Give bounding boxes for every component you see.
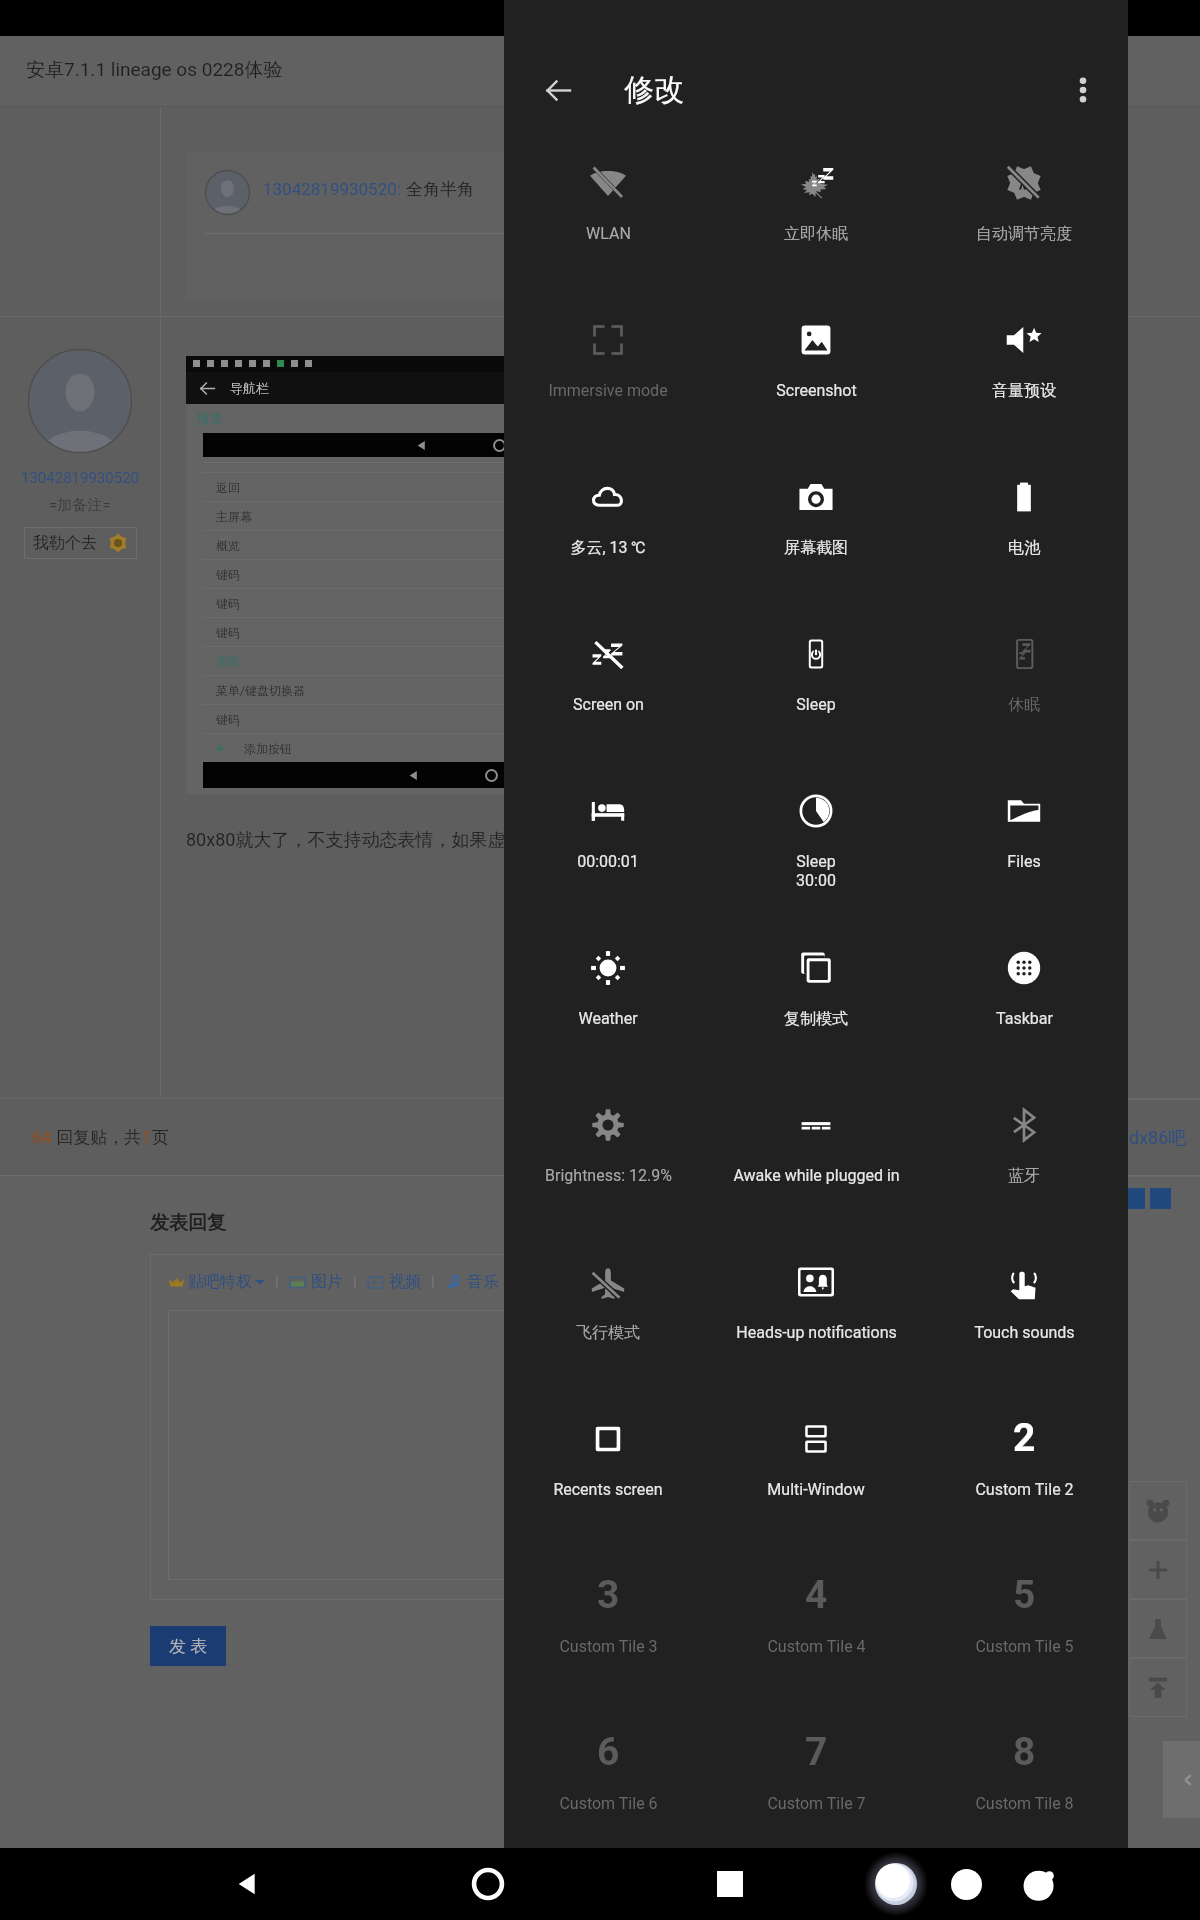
button[interactable]: Recents screen (504, 1421, 712, 1541)
staticText: Awake while plugged in (733, 1166, 900, 1185)
button[interactable]: 飞行模式 (504, 1264, 712, 1384)
staticText: Custom Tile 7 (767, 1794, 866, 1813)
staticText: 13042819930520: (263, 179, 406, 199)
staticText: 7 (805, 1729, 828, 1775)
staticText: 8 (1013, 1729, 1036, 1775)
staticText: 安卓7.1.1 lineage os 0228体验 (26, 58, 283, 82)
staticText: 键码 (216, 596, 240, 611)
button[interactable]: 7 (712, 1735, 920, 1855)
button[interactable]: Files (920, 793, 1128, 913)
staticText: 复制模式 (784, 1009, 848, 1029)
staticText: 添加按钮 (244, 741, 292, 756)
button[interactable]: Custom key 2 (930, 1848, 1002, 1920)
staticText: 80x80就大了，不支持动态表情，如果虚拟 (186, 829, 524, 852)
button[interactable]: Recents (694, 1848, 766, 1920)
staticText: Custom Tile 6 (559, 1794, 658, 1813)
button[interactable]: Taskbar (920, 950, 1128, 1070)
button[interactable]: Back (530, 62, 586, 118)
button[interactable]: WLAN (504, 165, 712, 285)
button[interactable]: 4 (712, 1578, 920, 1698)
staticText: 图片 (311, 1272, 343, 1292)
button[interactable]: Sleep (712, 793, 920, 913)
staticText: 我勒个去 (33, 533, 97, 553)
staticText: + (215, 738, 225, 758)
staticText: 概览 (216, 538, 240, 553)
button[interactable]: 00:00:01 (504, 793, 712, 913)
button[interactable]: Screen on (504, 636, 712, 756)
staticText: Brightness: 12.9% (545, 1166, 672, 1185)
staticText: 电池 (1008, 538, 1040, 558)
staticText: Files (1007, 852, 1041, 871)
staticText: Screen on (573, 695, 644, 714)
staticText: 菜单/键盘切换器 (216, 683, 305, 698)
staticText: Immersive mode (548, 381, 668, 400)
button[interactable]: Back (211, 1848, 283, 1920)
button[interactable]: 休眠 (920, 636, 1128, 756)
staticText: 修改 (624, 71, 684, 109)
button[interactable]: Touch sounds (920, 1264, 1128, 1384)
button[interactable]: Custom key 1 (860, 1848, 932, 1920)
staticText: 全角半角 (406, 179, 474, 200)
staticText: 休眠 (1008, 695, 1040, 715)
staticText: Heads-up notifications (736, 1323, 897, 1342)
button[interactable]: 5 (920, 1578, 1128, 1698)
staticText: 13042819930520 (21, 469, 140, 487)
staticText: 贴吧特权 (188, 1272, 252, 1292)
staticText: Screenshot (776, 381, 857, 400)
staticText: Recents screen (553, 1480, 663, 1499)
button[interactable]: 6 (504, 1735, 712, 1855)
staticText: 5 (1013, 1572, 1036, 1618)
button[interactable]: 多云, 13 ℃ (504, 479, 712, 599)
button[interactable]: 自动调节亮度 (920, 165, 1128, 285)
staticText: dx86吧 (1129, 1127, 1187, 1150)
staticText: 1 (142, 1127, 152, 1147)
button[interactable]: 3 (504, 1578, 712, 1698)
staticText: 2 (1013, 1415, 1036, 1461)
button[interactable]: Custom key 3 (1004, 1848, 1076, 1920)
button[interactable]: Multi-Window (712, 1421, 920, 1541)
staticText: 音乐 (467, 1272, 499, 1292)
staticText: 视频 (389, 1272, 421, 1292)
button[interactable]: 音量预设 (920, 322, 1128, 442)
staticText: Multi-Window (767, 1480, 865, 1499)
staticText: =加备注= (49, 496, 111, 515)
staticText: 回复贴，共 (52, 1127, 142, 1148)
button[interactable]: Awake while plugged in (712, 1107, 920, 1227)
staticText: | (431, 1273, 435, 1291)
button[interactable]: More options (1055, 62, 1111, 118)
button[interactable]: 立即休眠 (712, 165, 920, 285)
staticText: Custom Tile 4 (767, 1637, 866, 1656)
button[interactable]: 蓝牙 (920, 1107, 1128, 1227)
button[interactable]: 电池 (920, 479, 1128, 599)
button[interactable]: Sleep (712, 636, 920, 756)
staticText: 00:00:01 (577, 852, 639, 871)
button[interactable]: 8 (920, 1735, 1128, 1855)
staticText: Taskbar (996, 1009, 1053, 1028)
button[interactable]: 发 表 (150, 1626, 226, 1666)
button[interactable]: Heads-up notifications (712, 1264, 920, 1384)
button[interactable]: Immersive mode (504, 322, 712, 442)
staticText: 6 (597, 1729, 620, 1775)
staticText: 键码 (216, 567, 240, 582)
button[interactable]: Weather (504, 950, 712, 1070)
staticText: 飞行模式 (576, 1323, 640, 1343)
staticText: Weather (578, 1009, 638, 1028)
button[interactable]: Home (452, 1848, 524, 1920)
staticText: 多云, 13 ℃ (570, 538, 646, 558)
staticText: 返回 (216, 480, 240, 495)
button[interactable]: Screenshot (712, 322, 920, 442)
button[interactable]: 2 (920, 1421, 1128, 1541)
staticText: Sleep (796, 852, 836, 871)
staticText: 主屏幕 (216, 509, 252, 524)
staticText: 底部 (216, 654, 240, 669)
staticText: 蓝牙 (1008, 1166, 1040, 1186)
staticText: 立即休眠 (784, 224, 848, 244)
button[interactable]: 复制模式 (712, 950, 920, 1070)
staticText: Custom Tile 3 (559, 1637, 658, 1656)
staticText: 页 (152, 1127, 169, 1148)
staticText: 键码 (216, 625, 240, 640)
button[interactable]: Brightness: 12.9% (504, 1107, 712, 1227)
button[interactable]: 屏幕截图 (712, 479, 920, 599)
staticText: WLAN (586, 224, 631, 243)
staticText: 开通超 (586, 1421, 637, 1442)
